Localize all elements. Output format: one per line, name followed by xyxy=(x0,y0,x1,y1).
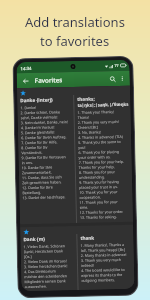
staticText: 11. Thank you for your xyxy=(79,199,119,205)
staticText: 7. Thank you for your help. xyxy=(79,159,125,165)
staticText: 5. Thank you the same to xyxy=(78,139,121,145)
button[interactable]: Favorite xyxy=(17,86,133,224)
staticText: Cheers! [Br.] xyxy=(78,124,99,130)
button[interactable]: Favorite xyxy=(20,225,134,291)
staticText: 6. Thank you for placing xyxy=(78,149,119,155)
staticText: 9. Danke für Ihr Vertrauen xyxy=(21,154,67,160)
staticText: 2. Many thanks in advance! xyxy=(81,252,127,258)
staticText: 1. Vielen Dank!, Schönen xyxy=(23,243,66,249)
staticText: Thanx! xyxy=(78,115,90,120)
staticText: 13. Thanks for asking. xyxy=(80,214,117,220)
staticText: Thanks for your help. xyxy=(79,164,115,170)
staticText: 3. Thank you very much xyxy=(81,257,122,263)
staticText: placed your trust in us. xyxy=(79,184,118,190)
staticText: 1. Danke! xyxy=(20,105,36,110)
staticText: express its thanks to the xyxy=(81,272,123,278)
staticText: Add translations xyxy=(25,13,125,31)
staticText: 1. Many thanks!, Thanks a xyxy=(80,242,125,248)
staticText: 77 xyxy=(114,63,119,68)
staticText: thank xyxy=(80,235,94,241)
staticText: Danke {interj} xyxy=(20,96,53,103)
staticText: indeed! xyxy=(81,263,94,268)
staticText: Zeit genommen haben. xyxy=(22,179,62,185)
staticText: Mitgliedern seinen Dank xyxy=(24,278,66,284)
button[interactable]: More options xyxy=(118,74,127,83)
staticText: 4. Thanks in advance! (TIA) xyxy=(78,134,123,140)
staticText: 13. Danke der Nachfrage. xyxy=(22,194,65,200)
staticText: understanding. xyxy=(79,174,105,180)
staticText: 10. Danke für Ihre xyxy=(22,164,53,170)
staticText: Dank {m} xyxy=(23,236,45,242)
staticText: Dank!, Herzlichen Dank xyxy=(24,248,64,254)
staticText: in uns. xyxy=(22,160,34,165)
staticText: 12. Danke für Ihre xyxy=(22,184,53,190)
staticText: you! xyxy=(78,145,86,150)
staticText: 12. Thanks for your order. xyxy=(80,209,124,215)
staticText: 9. Thank you for having xyxy=(79,179,119,185)
staticText: 1. Thank you! Thanks! xyxy=(77,109,115,115)
staticText: lot!, Thank you heaps! [Br.] xyxy=(81,247,126,253)
staticText: 2. Thank you very much! xyxy=(78,119,120,125)
staticText: 3. Nein danke!, Danke, nein! xyxy=(21,119,69,125)
staticText: your order with us. xyxy=(78,154,111,160)
staticText: 3. No, thanks! xyxy=(78,129,102,135)
staticText: Zusammenarbeit. xyxy=(22,169,52,175)
staticText: Bestellung. xyxy=(22,190,41,195)
staticText: 4. Das Direktorium xyxy=(24,268,56,274)
staticText: 2. Danke schön!, Danke xyxy=(20,109,61,115)
staticText: outgoing members. xyxy=(81,277,115,283)
staticText: sehr!, Danke vielmals! xyxy=(21,114,58,120)
staticText: 10. Thank you for your xyxy=(79,189,118,195)
staticText: 4. Danke im Voraus! xyxy=(21,124,55,130)
staticText: 11. Danke, dass Sie sich xyxy=(22,174,62,180)
staticText: 2. Vielen Dank im Voraus! xyxy=(24,258,67,264)
staticText: Favorites xyxy=(35,75,63,85)
staticText: möchte den scheidenden xyxy=(24,273,67,279)
staticText: to favorites xyxy=(40,32,110,50)
staticText: Verständnis. xyxy=(21,150,42,155)
staticText: thanks; xyxy=(77,95,95,102)
staticText: aussprechen. xyxy=(24,284,47,288)
staticText: [Ös.] xyxy=(24,254,32,259)
staticText: 4. The board would like to xyxy=(81,267,125,273)
staticText: 3. Vielen herzlichen Dank! xyxy=(24,263,68,269)
button[interactable]: Back xyxy=(20,75,31,86)
staticText: 5. Danke gleichfalls! xyxy=(21,129,55,135)
staticText: 7. Danke für Ihr Hilfe. xyxy=(21,139,58,145)
staticText: time. xyxy=(80,205,89,210)
staticText: 8. Danke für Ihr xyxy=(21,145,48,150)
button[interactable]: Favorite xyxy=(20,90,26,96)
staticText: 8. Thank you for your xyxy=(79,169,115,175)
staticText: 6. Danke für Ihren Auftrag. xyxy=(21,134,67,140)
staticText: ta|ŋks|;|saŋk.|/ˈθæŋks/ xyxy=(77,101,128,108)
button[interactable]: Favorite xyxy=(23,229,29,235)
staticText: 14:34 xyxy=(20,65,31,71)
staticText: cooperation. xyxy=(79,194,101,200)
button[interactable]: Search xyxy=(107,73,118,84)
